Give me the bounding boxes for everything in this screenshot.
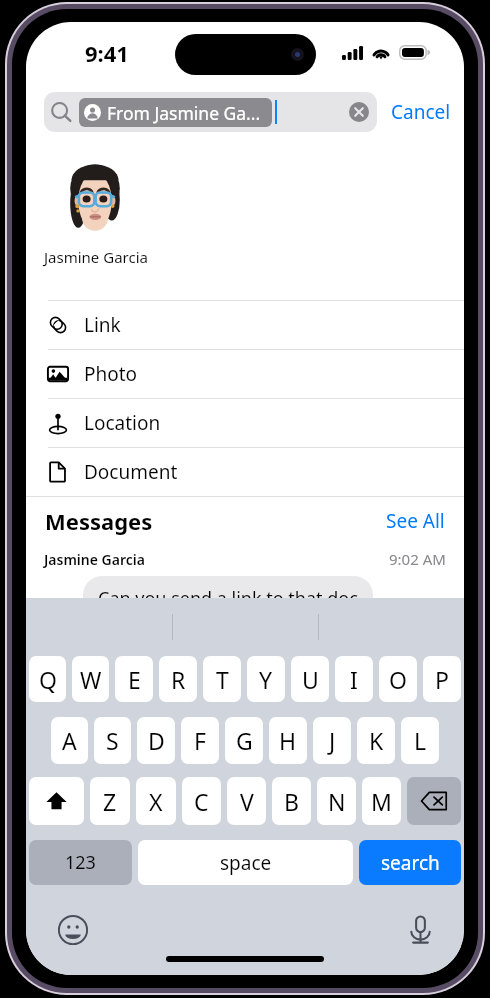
staticText: Jasmine Garcia [44, 550, 145, 569]
staticText: W [80, 664, 102, 695]
staticText: A [62, 725, 77, 756]
button[interactable]: Z [90, 777, 130, 825]
staticText: E [128, 664, 141, 695]
staticText: D [148, 725, 165, 756]
button[interactable]: Location [26, 399, 464, 447]
button[interactable]: E [115, 656, 153, 702]
button[interactable]: O [379, 656, 417, 702]
staticText: Link [84, 312, 121, 338]
staticText: Document [84, 459, 178, 485]
button[interactable]: C [182, 777, 221, 825]
button[interactable]: A [51, 717, 88, 764]
button[interactable]: M [362, 777, 401, 825]
staticText: B [284, 786, 299, 817]
staticText: I [350, 664, 358, 695]
staticText: S [106, 725, 119, 756]
button[interactable]: W [72, 656, 109, 702]
button[interactable]: V [227, 777, 266, 825]
button[interactable]: J [313, 717, 351, 764]
staticText: 9:41 [85, 38, 129, 68]
button[interactable]: Y [247, 656, 285, 702]
button[interactable]: X [136, 777, 176, 825]
button[interactable]: search [359, 840, 461, 885]
staticText: space [220, 850, 272, 876]
staticText: See All [386, 508, 445, 534]
button[interactable]: Photo [26, 350, 464, 398]
button[interactable]: R [159, 656, 197, 702]
staticText: R [171, 664, 186, 695]
button[interactable]: N [317, 777, 356, 825]
button[interactable]: Link [26, 301, 464, 349]
staticText: Photo [84, 361, 138, 387]
staticText: O [389, 664, 407, 695]
staticText: search [381, 850, 440, 876]
button[interactable]: From Jasmine Ga... [44, 92, 377, 132]
staticText: 9:02 AM [389, 549, 446, 569]
button[interactable]: Jasmine Garcia [26, 549, 464, 621]
staticText: Messages [45, 506, 153, 536]
button[interactable]: I [335, 656, 373, 702]
button[interactable]: U [291, 656, 329, 702]
staticText: Can you send a link to that doc [98, 586, 358, 611]
staticText: Z [103, 786, 117, 817]
staticText: G [236, 725, 253, 756]
button[interactable]: B [272, 777, 311, 825]
staticText: Q [39, 664, 57, 695]
button[interactable]: Dictation [402, 912, 438, 948]
button[interactable]: L [401, 717, 439, 764]
staticText: 123 [65, 850, 96, 875]
staticText: P [435, 664, 449, 695]
staticText: H [279, 725, 297, 756]
staticText: L [414, 725, 427, 756]
button[interactable]: space [138, 840, 353, 885]
button[interactable]: Q [29, 656, 66, 702]
button[interactable]: Jasmine Garcia [26, 140, 464, 300]
button[interactable]: T [203, 656, 241, 702]
staticText: Cancel [391, 99, 451, 125]
staticText: C [194, 786, 209, 817]
staticText: M [371, 786, 392, 817]
button[interactable]: Emoji [55, 912, 91, 948]
button[interactable]: 123 [29, 840, 132, 885]
button[interactable]: H [269, 717, 307, 764]
staticText: T [216, 664, 229, 695]
staticText: Y [259, 664, 273, 695]
staticText: Jasmine Garcia [44, 247, 148, 267]
button[interactable]: Cancel [390, 91, 452, 133]
button[interactable]: D [137, 717, 175, 764]
button[interactable]: From Jasmine Ga... [79, 98, 272, 127]
button[interactable]: Backspace [407, 777, 461, 825]
button[interactable]: F [181, 717, 219, 764]
button[interactable]: Shift [29, 777, 84, 825]
button[interactable]: See All [385, 502, 446, 540]
staticText: J [329, 725, 336, 756]
staticText: U [302, 664, 319, 695]
staticText: N [328, 786, 346, 817]
staticText: Location [84, 410, 161, 436]
button[interactable]: G [225, 717, 263, 764]
button[interactable]: K [357, 717, 395, 764]
staticText: K [369, 725, 384, 756]
button[interactable]: S [94, 717, 131, 764]
staticText: V [240, 786, 254, 817]
staticText: X [149, 786, 163, 817]
staticText: F [194, 725, 206, 756]
button[interactable]: Clear [349, 102, 369, 122]
button[interactable]: P [423, 656, 461, 702]
staticText: From Jasmine Ga... [107, 101, 261, 125]
button[interactable]: Document [26, 448, 464, 496]
